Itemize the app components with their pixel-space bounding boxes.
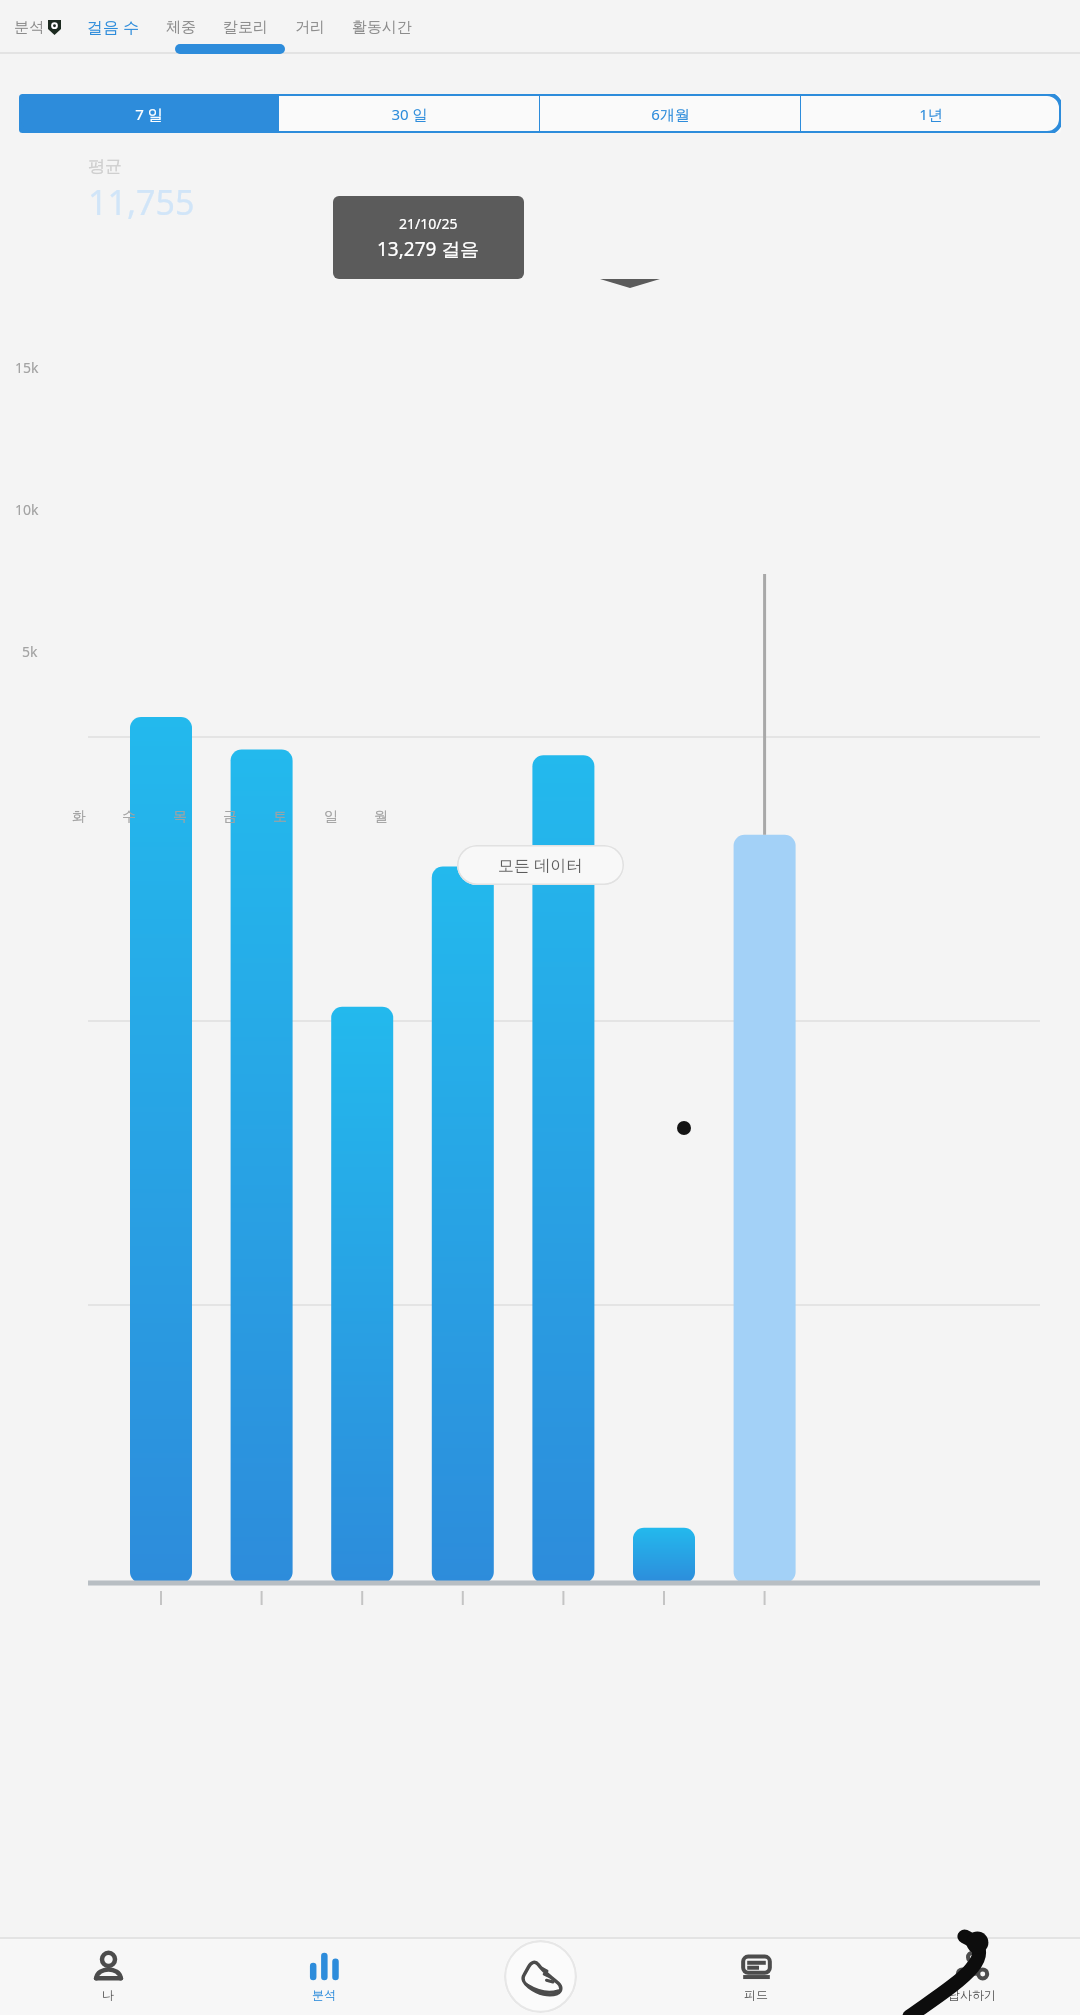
staticText: 거리 xyxy=(295,18,325,37)
button[interactable]: 답사하기 xyxy=(864,1938,1080,2015)
staticText: 1년 xyxy=(919,104,943,124)
staticText: 토 xyxy=(273,808,287,826)
button[interactable]: 거리 xyxy=(293,10,327,45)
button[interactable]: 걸음 수 xyxy=(85,8,142,46)
staticText: 수 xyxy=(122,808,136,826)
button[interactable]: 7 일 xyxy=(19,94,278,133)
staticText: 일 xyxy=(324,808,338,826)
staticText: 나 xyxy=(102,1987,114,2002)
staticText: 7 일 xyxy=(135,104,163,124)
button[interactable]: 21/10/25 xyxy=(333,196,524,279)
staticText: 분석 xyxy=(312,1987,336,2002)
button[interactable]: 모든 데이터 xyxy=(457,845,624,885)
button[interactable]: 나 xyxy=(0,1938,216,2015)
staticText: 모든 데이터 xyxy=(498,854,583,876)
button[interactable]: 분석 xyxy=(216,1938,432,2015)
button[interactable]: 6개월 xyxy=(540,94,800,133)
staticText: 10k xyxy=(15,500,39,519)
staticText: 금 xyxy=(223,808,237,826)
staticText: 30 일 xyxy=(391,104,428,124)
staticText: 걸음 수 xyxy=(87,16,140,38)
staticText: 칼로리 xyxy=(223,18,268,37)
staticText: 6개월 xyxy=(651,104,690,124)
button[interactable]: 칼로리 xyxy=(221,10,270,45)
button[interactable]: Start walking xyxy=(504,1940,577,2013)
staticText: 13,279 걸음 xyxy=(377,236,480,262)
staticText: 월 xyxy=(374,808,388,826)
staticText: 5k xyxy=(22,642,38,661)
staticText: 피드 xyxy=(744,1987,768,2002)
staticText: 활동시간 xyxy=(352,18,412,37)
button[interactable]: 1년 xyxy=(801,94,1061,133)
button[interactable]: 체중 xyxy=(164,10,198,45)
staticText: 15k xyxy=(15,358,39,377)
staticText: 평균 xyxy=(88,156,122,177)
staticText: 목 xyxy=(173,808,187,826)
button[interactable]: 피드 xyxy=(648,1938,864,2015)
button[interactable]: 활동시간 xyxy=(350,10,414,45)
staticText: 화 xyxy=(72,808,86,826)
staticText: 답사하기 xyxy=(948,1987,996,2002)
staticText: 11,755 xyxy=(88,179,195,225)
staticText: 체중 xyxy=(166,18,196,37)
staticText: 21/10/25 xyxy=(399,214,458,233)
staticText: 분석 xyxy=(14,18,44,37)
button[interactable]: 30 일 xyxy=(279,94,539,133)
button[interactable]: 분석 xyxy=(12,10,63,45)
